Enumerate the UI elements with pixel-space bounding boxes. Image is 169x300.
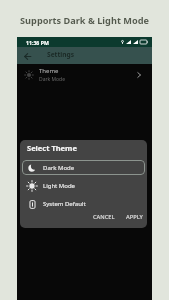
button[interactable]: Light Mode [22, 178, 145, 193]
button[interactable]: Theme [17, 64, 152, 86]
button[interactable]: Back [21, 50, 33, 62]
staticText: Dark Mode [39, 76, 65, 83]
staticText: Supports Dark & Light Mode [0, 14, 169, 27]
staticText: Dark Mode [43, 164, 75, 172]
staticText: System Default [43, 200, 86, 208]
staticText: Theme [39, 67, 59, 75]
staticText: 11:36 PM [26, 39, 49, 46]
button[interactable]: Dark Mode [22, 160, 145, 175]
button[interactable]: CANCEL [90, 211, 118, 223]
staticText: Select Theme [27, 143, 77, 153]
button[interactable]: APPLY [123, 211, 146, 223]
staticText: Light Mode [43, 182, 75, 190]
button[interactable]: System Default [22, 196, 145, 211]
staticText: Settings [47, 50, 75, 59]
